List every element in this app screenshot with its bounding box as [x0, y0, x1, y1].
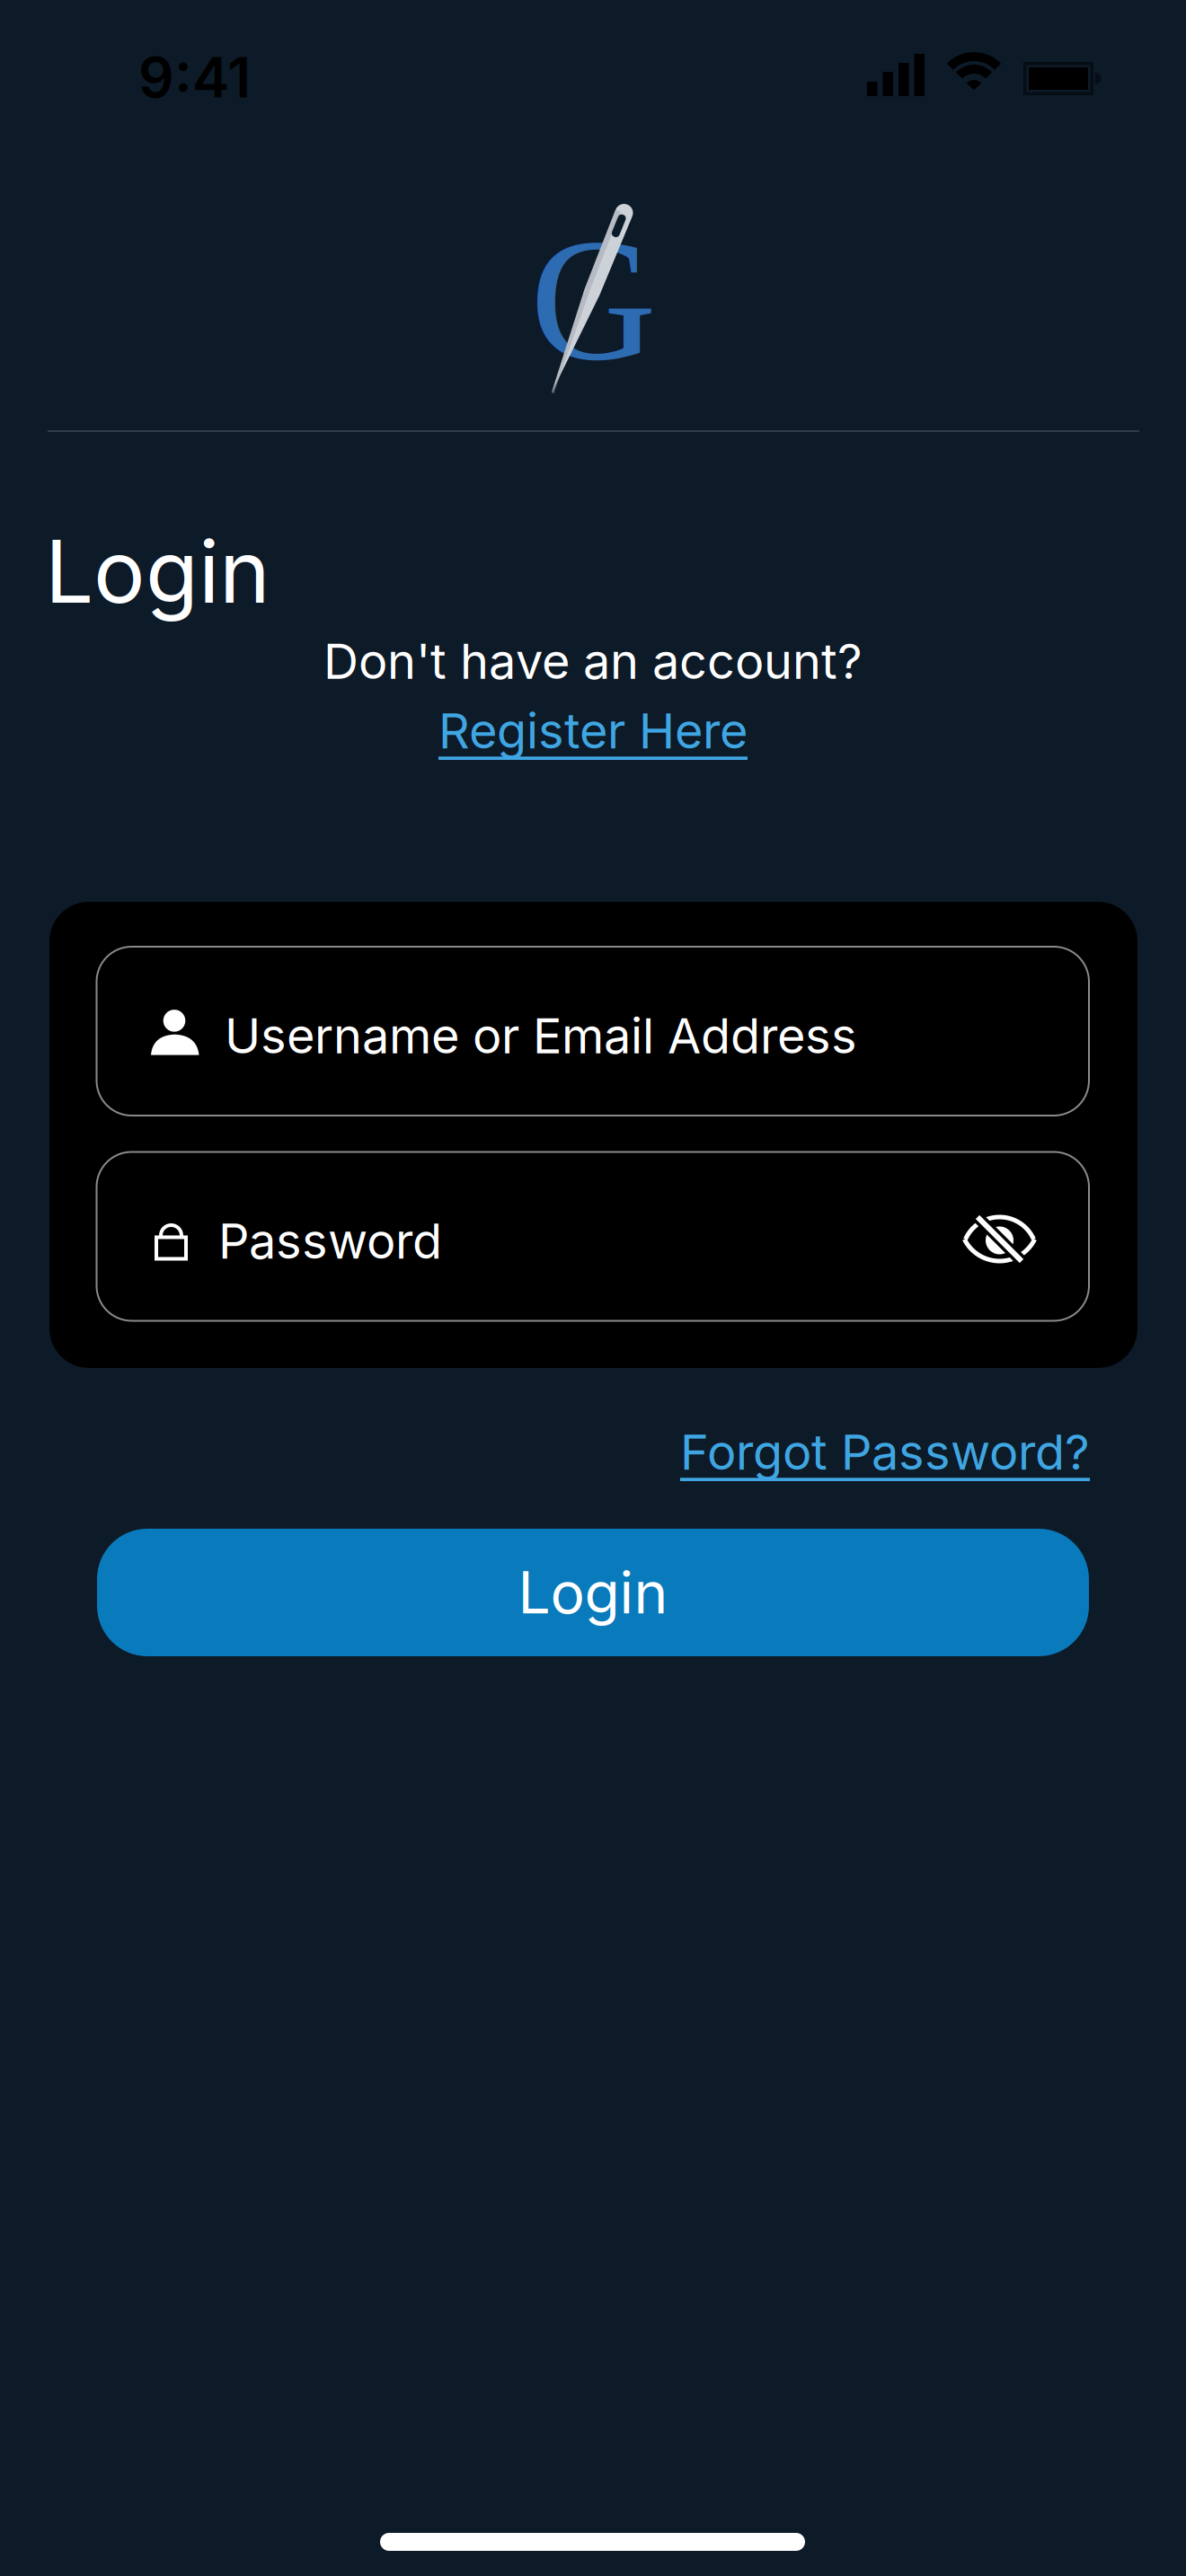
staticText: Forgot Password?	[680, 1423, 1090, 1481]
staticText: G	[530, 203, 657, 396]
staticText: Password	[218, 1211, 442, 1270]
button[interactable]: Username or Email Address	[97, 947, 1089, 1116]
button[interactable]: Register Here	[438, 701, 748, 760]
staticText: Username or Email Address	[225, 1006, 857, 1065]
staticText: Register Here	[438, 701, 748, 760]
button[interactable]: Login	[97, 1529, 1089, 1656]
staticText: Login	[45, 519, 270, 623]
staticText: Don't have an account?	[323, 632, 863, 690]
staticText: 9:41	[138, 44, 251, 111]
button[interactable]: Forgot Password?	[680, 1423, 1090, 1481]
button[interactable]: Password	[97, 1152, 1089, 1321]
button[interactable]: Show password	[965, 1213, 1034, 1259]
staticText: Login	[518, 1558, 668, 1627]
